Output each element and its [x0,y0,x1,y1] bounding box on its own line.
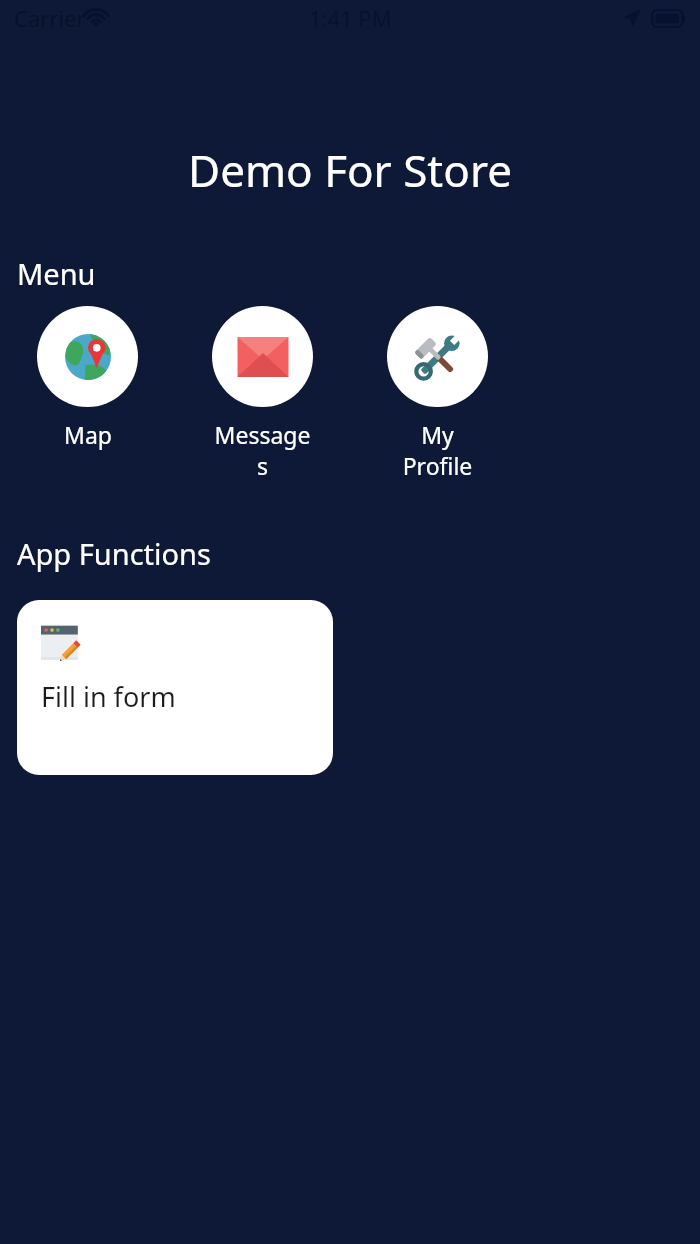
button[interactable]: My Profile [387,306,488,481]
staticText: Fill in form [41,678,176,715]
button[interactable]: Messages [212,306,313,481]
button[interactable]: Fill in form [17,600,333,775]
staticText: Demo For Store [0,140,700,200]
staticText: 1:41 PM [309,3,392,33]
staticText: App Functions [17,534,211,573]
button[interactable]: Map [37,306,138,450]
staticText: My Profile [387,419,488,481]
staticText: Map [64,419,112,450]
staticText: Messages [212,419,313,481]
staticText: Carrier [14,3,86,33]
staticText: Menu [17,254,96,293]
